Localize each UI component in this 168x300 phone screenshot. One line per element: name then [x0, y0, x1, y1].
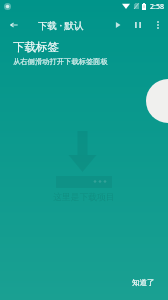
button[interactable]: Resume downloads [108, 15, 128, 35]
button[interactable]: Pause downloads [128, 15, 148, 35]
staticText: 下载标签 [13, 40, 59, 54]
staticText: 这里是下载项目 [53, 192, 115, 203]
button[interactable]: Back [4, 15, 24, 35]
staticText: 知道了 [132, 278, 155, 287]
staticText: 从右侧滑动打开下载标签面板 [13, 57, 108, 66]
staticText: 下载 · 默认 [38, 19, 84, 32]
button[interactable]: 知道了 [126, 274, 161, 291]
staticText: 2:58 [150, 2, 164, 12]
button[interactable]: More options [148, 15, 168, 35]
